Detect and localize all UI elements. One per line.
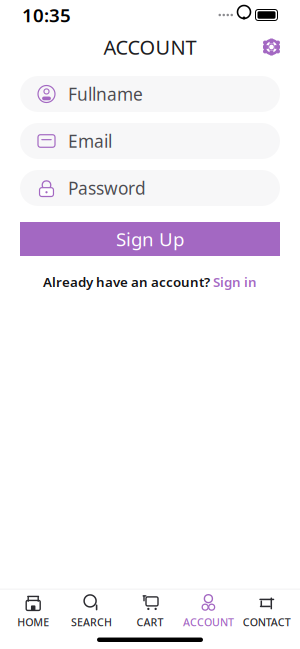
staticText: Password [68, 176, 146, 199]
staticText: CART [136, 615, 163, 629]
staticText: Email [68, 129, 112, 152]
staticText: 10:35 [22, 3, 71, 27]
button[interactable]: Already have an account? [20, 269, 280, 295]
button[interactable]: Password [20, 170, 280, 206]
button[interactable]: CONTACT [238, 589, 296, 633]
button[interactable]: Settings [257, 32, 286, 61]
staticText: ACCOUNT [183, 615, 234, 629]
staticText: Sign in [213, 273, 257, 291]
staticText: HOME [17, 615, 49, 629]
staticText: CONTACT [243, 615, 291, 629]
staticText: SEARCH [71, 615, 112, 629]
button[interactable]: ACCOUNT [179, 589, 238, 633]
button[interactable]: Sign Up [20, 222, 280, 256]
button[interactable]: Fullname [20, 76, 280, 112]
button[interactable]: SEARCH [62, 589, 121, 633]
staticText: Sign Up [116, 227, 184, 251]
staticText: Already have an account? [43, 273, 210, 291]
button[interactable]: CART [121, 589, 179, 633]
button[interactable]: Email [20, 123, 280, 159]
button[interactable]: HOME [4, 589, 62, 633]
staticText: Fullname [68, 82, 143, 105]
staticText: ACCOUNT [103, 34, 196, 60]
